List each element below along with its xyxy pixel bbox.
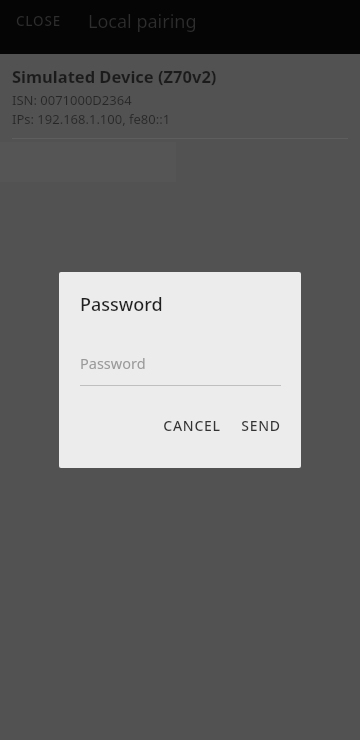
- staticText: IPs: 192.168.1.100, fe80::1: [12, 110, 171, 128]
- staticText: Password: [80, 292, 163, 317]
- button[interactable]: CLOSE: [0, 0, 78, 42]
- staticText: Password: [80, 353, 146, 373]
- staticText: Local pairing: [88, 9, 197, 34]
- staticText: CANCEL: [163, 416, 221, 435]
- button[interactable]: Password: [80, 353, 281, 386]
- button[interactable]: Simulated Device (Z70v2): [0, 54, 360, 138]
- button[interactable]: SEND: [233, 408, 289, 443]
- button[interactable]: CANCEL: [155, 408, 229, 443]
- staticText: CLOSE: [16, 12, 62, 30]
- staticText: ISN: 0071000D2364: [12, 91, 132, 109]
- staticText: SEND: [241, 416, 281, 435]
- staticText: Simulated Device (Z70v2): [12, 65, 217, 87]
